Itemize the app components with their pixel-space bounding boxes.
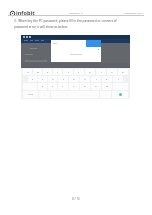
button[interactable]: h [80,76,90,82]
staticText: Conference LCD-A [124,12,144,15]
staticText: s [42,78,44,81]
staticText: m [106,85,109,88]
staticText: l [118,78,119,81]
button[interactable]: x [48,83,57,90]
button[interactable]: a [28,76,37,82]
button[interactable] [112,91,128,98]
staticText: z [42,85,44,88]
staticText: Manual V1.0 [69,12,83,15]
staticText: 8 / 16 [72,197,80,201]
staticText: c [62,85,64,88]
staticText: p [122,71,124,74]
button[interactable]: j [91,76,101,82]
button[interactable]: z [38,83,47,90]
button[interactable]: s [38,76,47,82]
button[interactable]: d [48,76,57,82]
button[interactable]: v [69,83,79,90]
staticText: k [106,78,108,81]
staticText: e [47,71,49,74]
button[interactable]: Text [51,40,86,47]
button[interactable]: e [43,69,52,75]
staticText: f [63,78,64,81]
button[interactable]: l [113,76,123,82]
staticText: v [73,85,75,88]
button[interactable]: u [85,69,95,75]
button[interactable]: f [58,76,68,82]
button[interactable]: b [80,83,90,90]
staticText: Connecting [70,53,82,56]
button[interactable]: n [91,83,101,90]
staticText: n [95,85,97,88]
button[interactable]: k [102,76,112,82]
staticText: x [52,85,54,88]
staticText: r [57,71,58,74]
button[interactable]: t [63,69,73,75]
button[interactable]: i [96,69,106,75]
button[interactable]: ?123 [23,91,38,98]
staticText: password error, it will show as below: [14,25,68,29]
button[interactable]: m [102,83,112,90]
staticText: q [27,71,29,74]
staticText: Text [53,42,58,45]
staticText: h [84,78,86,81]
staticText: i [101,71,102,74]
staticText: o [111,71,113,74]
button[interactable]: w [33,69,42,75]
staticText: t [68,71,69,74]
staticText: a [32,78,34,81]
button[interactable]: q [23,69,32,75]
staticText: u [89,71,91,74]
staticText: . [105,93,106,96]
staticText: d [52,78,54,81]
staticText: w [37,71,39,74]
staticText: j [96,78,97,81]
staticText: y [78,71,80,74]
button[interactable]: p [118,69,128,75]
button[interactable]: g [69,76,79,82]
staticText: infobit [16,9,35,17]
staticText: ?123 [28,93,33,96]
button[interactable]: y [74,69,84,75]
button[interactable]: o [107,69,117,75]
button[interactable]: c [58,83,68,90]
staticText: , [44,93,45,96]
button[interactable]: r [53,69,62,75]
staticText: 3. When key the PC password, please fill… [14,19,117,23]
staticText: g [73,78,75,81]
staticText: b [84,85,86,88]
